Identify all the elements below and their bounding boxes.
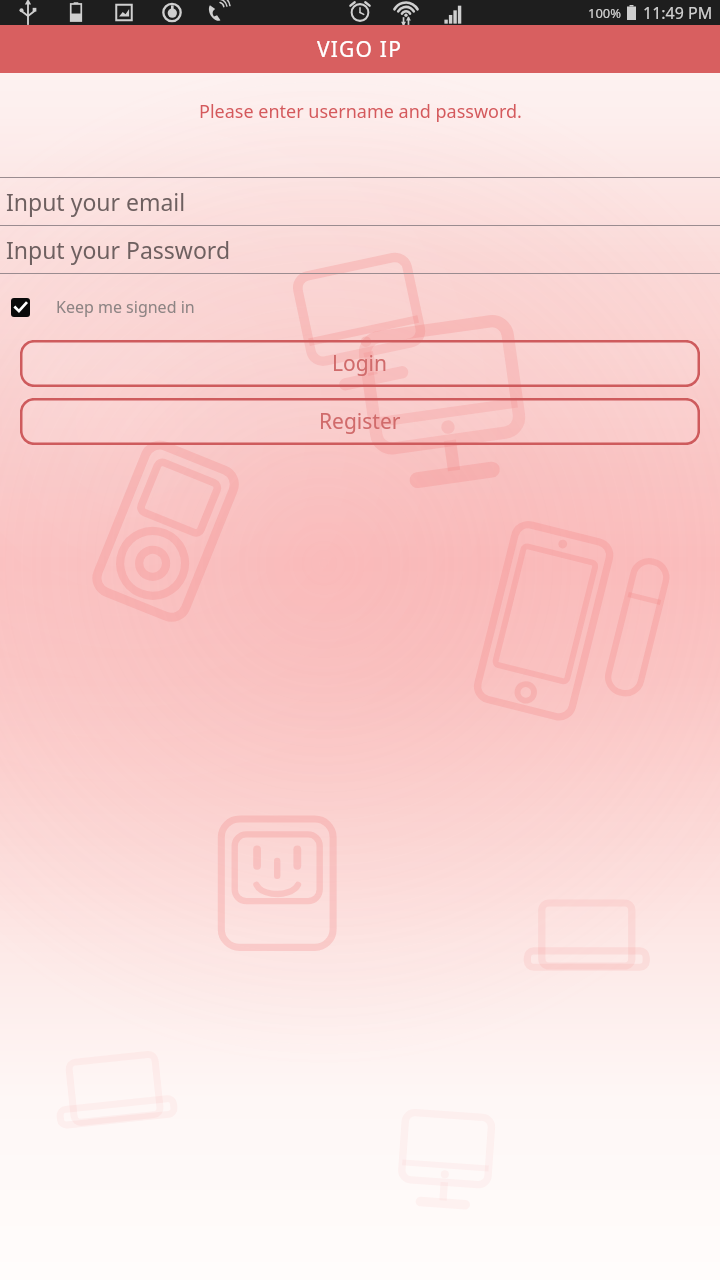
button[interactable]: Login [20, 340, 700, 387]
staticText: 11:49 PM [643, 2, 713, 24]
staticText: Login [332, 349, 388, 378]
staticText: VIGO IP [317, 35, 403, 64]
button[interactable]: Input your Password [0, 226, 720, 273]
button[interactable]: Keep me signed in [0, 274, 720, 340]
staticText: Keep me signed in [56, 296, 195, 318]
staticText: 100% [588, 4, 622, 22]
staticText: Please enter username and password. [199, 99, 522, 124]
button[interactable]: Input your email [0, 178, 720, 225]
staticText: Register [319, 407, 401, 436]
staticText: Input your email [6, 186, 186, 217]
staticText: Input your Password [6, 234, 231, 265]
button[interactable]: Register [20, 398, 700, 445]
